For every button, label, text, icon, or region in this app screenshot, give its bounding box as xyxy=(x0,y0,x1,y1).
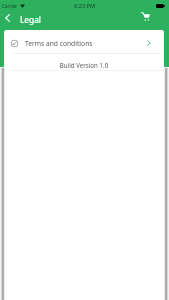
staticText: Legal xyxy=(20,14,41,25)
button[interactable]: Terms and conditions xyxy=(4,30,164,53)
staticText: 6:23 PM xyxy=(74,2,96,10)
button[interactable]: Back xyxy=(0,10,14,26)
staticText: Carrier xyxy=(2,3,18,9)
button[interactable]: Shopping cart xyxy=(137,8,153,24)
staticText: Terms and conditions xyxy=(25,39,93,48)
staticText: Build Version 1.0 xyxy=(4,61,164,69)
